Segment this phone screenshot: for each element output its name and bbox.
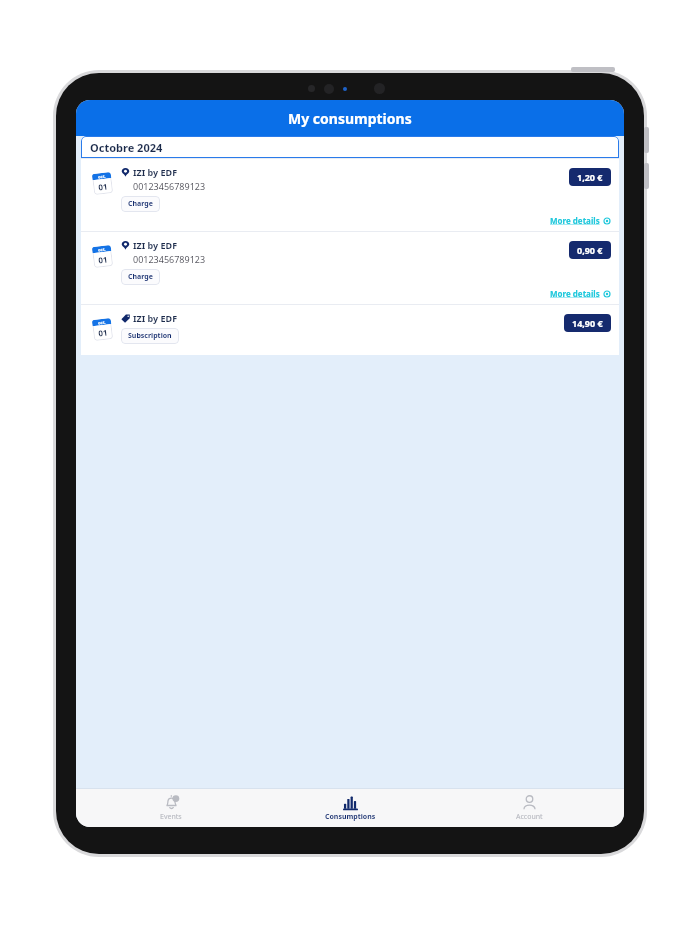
staticText: oct.: [98, 319, 106, 325]
button[interactable]: Events: [135, 793, 207, 824]
button[interactable]: Charge: [121, 269, 160, 285]
staticText: Octobre 2024: [90, 140, 163, 155]
staticText: 00123456789123: [133, 180, 206, 192]
staticText: Charge: [128, 199, 153, 209]
staticText: 00123456789123: [133, 253, 206, 265]
staticText: oct.: [98, 246, 106, 252]
button[interactable]: oct.: [81, 305, 619, 355]
button[interactable]: More details: [550, 285, 619, 304]
staticText: 14,90 €: [572, 317, 603, 329]
staticText: IZI by EDF: [133, 312, 178, 324]
button[interactable]: More details: [550, 212, 619, 231]
staticText: oct.: [98, 173, 106, 179]
staticText: Events: [160, 812, 182, 822]
staticText: More details: [550, 215, 600, 226]
staticText: 01: [98, 253, 109, 265]
staticText: 01: [98, 326, 109, 338]
staticText: 1,20 €: [577, 171, 603, 183]
staticText: Subscription: [128, 331, 172, 341]
button[interactable]: oct.: [81, 159, 619, 231]
staticText: IZI by EDF: [133, 166, 178, 178]
staticText: My consumptions: [288, 109, 412, 128]
staticText: 0,90 €: [577, 244, 603, 256]
staticText: Account: [516, 812, 543, 822]
staticText: IZI by EDF: [133, 239, 178, 251]
button[interactable]: oct.: [81, 232, 619, 304]
button[interactable]: Account: [493, 793, 565, 824]
staticText: More details: [550, 288, 600, 299]
button[interactable]: Subscription: [121, 328, 179, 344]
staticText: Charge: [128, 272, 153, 282]
button[interactable]: Charge: [121, 196, 160, 212]
staticText: 01: [98, 180, 109, 192]
staticText: Consumptions: [325, 812, 376, 822]
button[interactable]: Consumptions: [314, 793, 386, 824]
